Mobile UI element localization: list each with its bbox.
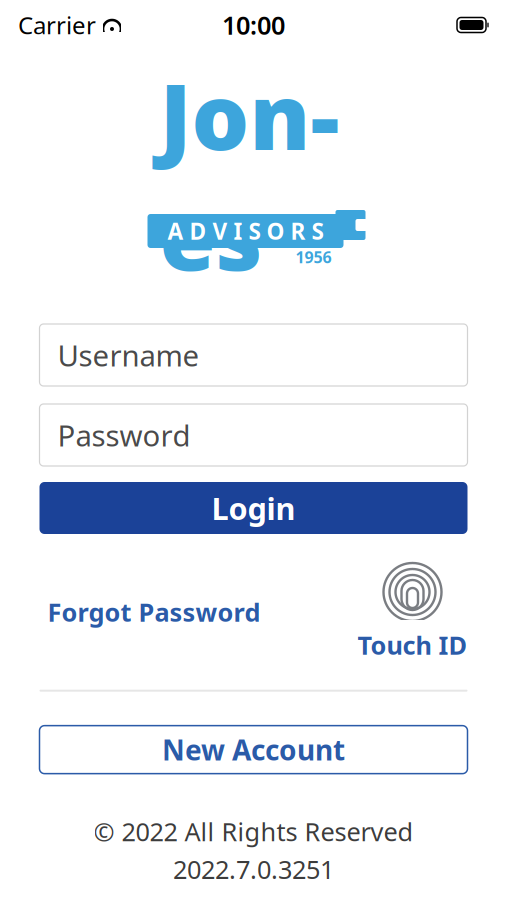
staticText: Username <box>57 335 199 374</box>
staticText: 2022.7.0.3251 <box>173 852 334 886</box>
staticText: Touch ID <box>357 628 467 662</box>
staticText: 1956 <box>295 246 331 268</box>
staticText: A D V I S O R S <box>167 216 323 246</box>
staticText: © 2022 All Rights Reserved <box>93 815 413 848</box>
staticText: Jones <box>159 55 339 295</box>
staticText: Login <box>211 488 295 528</box>
button[interactable]: Touch ID <box>357 562 467 662</box>
button[interactable]: Forgot Password <box>47 587 260 637</box>
staticText: Password <box>57 415 190 454</box>
staticText: 10:00 <box>222 8 285 42</box>
staticText: New Account <box>162 731 345 768</box>
button[interactable]: Login <box>39 482 467 534</box>
button[interactable]: New Account <box>39 726 467 774</box>
staticText: Forgot Password <box>47 595 260 629</box>
staticText: Carrier <box>18 9 96 41</box>
